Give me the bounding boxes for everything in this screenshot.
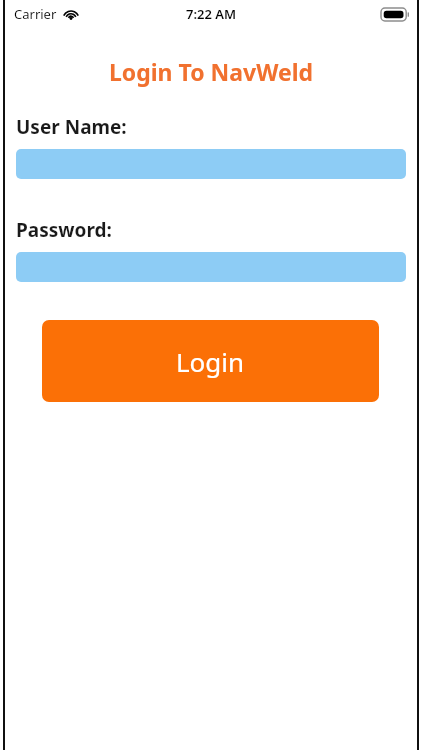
- staticText: Carrier: [14, 5, 57, 23]
- staticText: Login: [176, 344, 245, 379]
- staticText: 7:22 AM: [186, 5, 237, 23]
- button[interactable]: Text input field: [16, 149, 406, 179]
- button[interactable]: Text input field: [16, 252, 406, 282]
- staticText: Login To NavWeld: [0, 56, 422, 87]
- button[interactable]: Login: [42, 320, 379, 402]
- staticText: User Name:: [16, 114, 127, 140]
- staticText: Password:: [16, 217, 112, 243]
